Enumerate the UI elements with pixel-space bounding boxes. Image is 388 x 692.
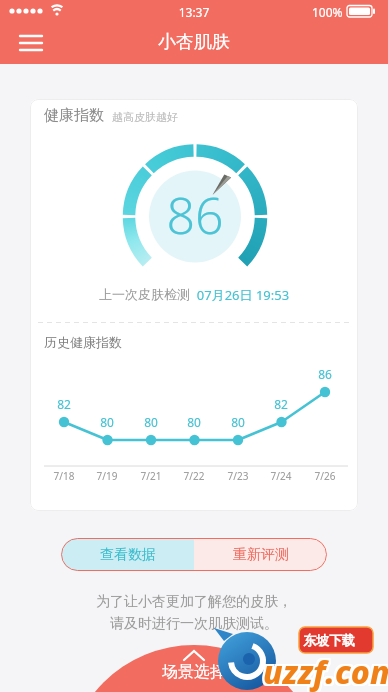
staticText: 82: [49, 396, 79, 412]
staticText: 小杏肌肤: [0, 31, 388, 54]
staticText: 80: [179, 414, 209, 430]
staticText: 13:37: [0, 4, 388, 20]
button[interactable]: [66, 645, 322, 692]
staticText: 82: [266, 396, 296, 412]
staticText: 86: [135, 181, 255, 249]
staticText: 80: [223, 414, 253, 430]
staticText: uzzf.com: [263, 648, 388, 692]
staticText: uzzf.com: [261, 648, 388, 692]
staticText: 健康指数: [44, 106, 104, 125]
button[interactable]: 重新评测: [194, 538, 327, 571]
staticText: uzzf.com: [265, 652, 388, 692]
staticText: 请及时进行一次肌肤测试。: [0, 615, 388, 633]
staticText: 7/24: [263, 469, 299, 483]
staticText: 重新评测: [233, 546, 289, 564]
staticText: 100%: [312, 4, 343, 20]
staticText: 查看数据: [100, 546, 156, 564]
staticText: uzzf.com: [265, 648, 388, 692]
staticText: 80: [92, 414, 122, 430]
staticText: 越高皮肤越好: [112, 110, 178, 124]
staticText: 7/21: [133, 469, 169, 483]
staticText: 7/22: [176, 469, 212, 483]
staticText: 7/18: [46, 469, 82, 483]
staticText: 80: [136, 414, 166, 430]
staticText: uzzf.com: [261, 652, 388, 692]
button[interactable]: [12, 28, 50, 56]
staticText: 上一次皮肤检测: [99, 286, 190, 302]
staticText: uzzf.com: [261, 650, 388, 692]
staticText: 07月26日 19:53: [190, 286, 290, 304]
staticText: 为了让小杏更加了解您的皮肤，: [0, 593, 388, 611]
button[interactable]: 查看数据: [61, 538, 194, 571]
staticText: 86: [310, 366, 340, 382]
staticText: uzzf.com: [263, 650, 388, 692]
staticText: 历史健康指数: [44, 334, 122, 350]
staticText: uzzf.com: [263, 652, 388, 692]
staticText: uzzf.com: [265, 650, 388, 692]
staticText: 7/26: [307, 469, 343, 483]
staticText: 东坡下载: [303, 632, 355, 648]
staticText: 7/19: [89, 469, 125, 483]
staticText: 场景选择: [0, 662, 388, 682]
staticText: 7/23: [220, 469, 256, 483]
